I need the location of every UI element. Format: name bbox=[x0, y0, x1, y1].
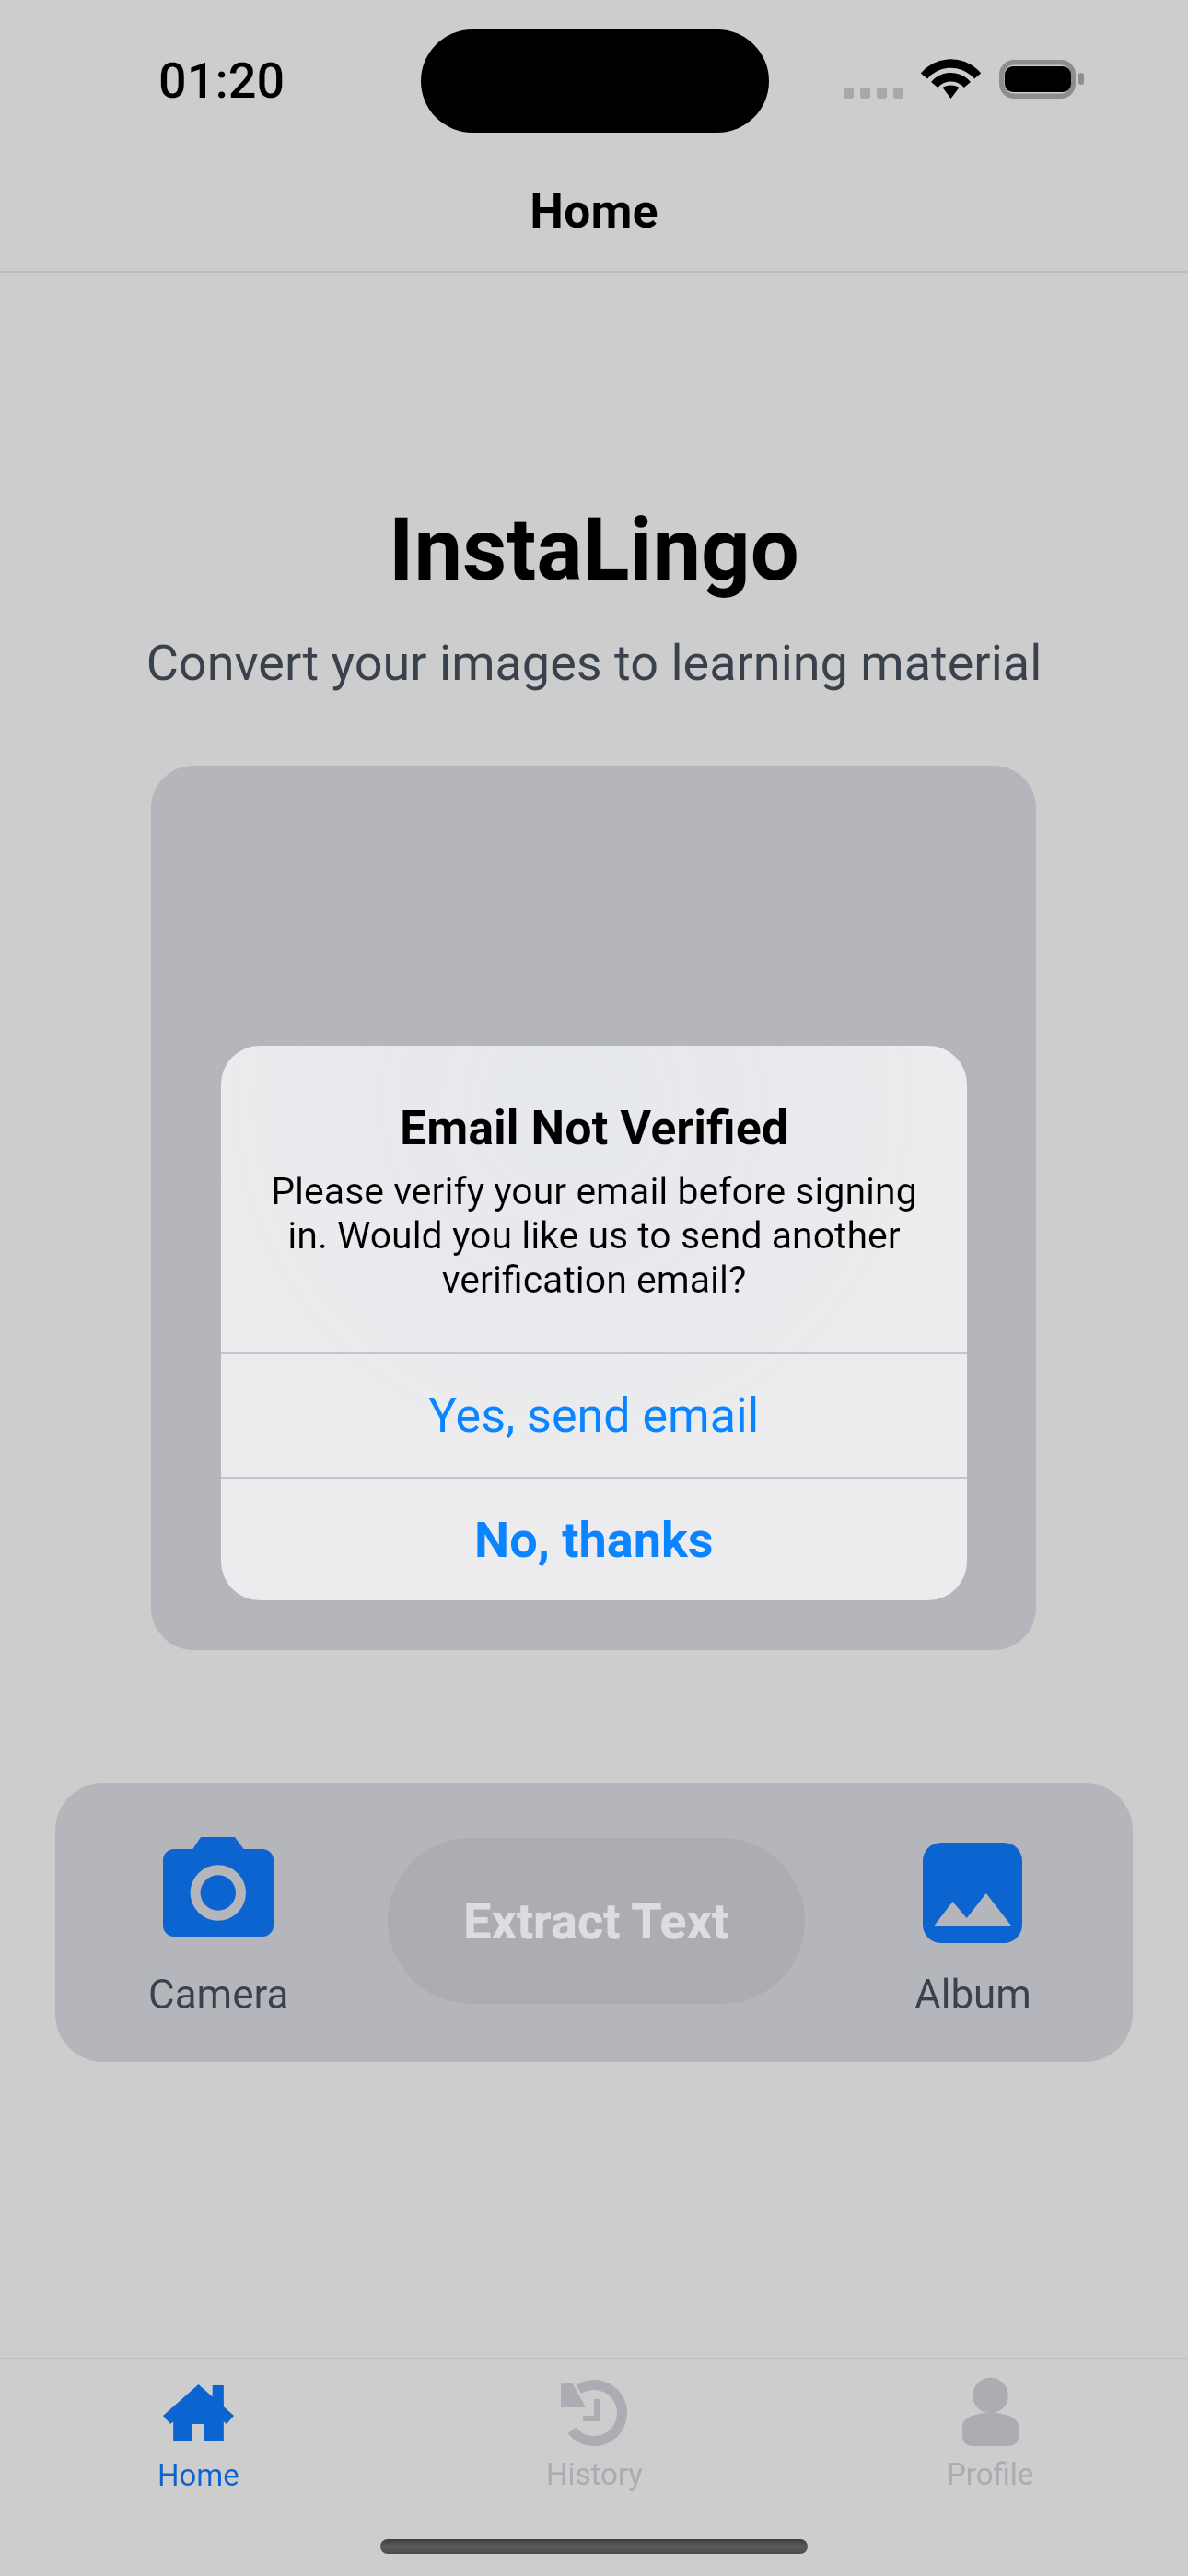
staticText: Yes, send email bbox=[428, 1388, 760, 1444]
staticText: Convert your images to learning material bbox=[0, 634, 1188, 692]
button[interactable]: Selected image preview bbox=[151, 766, 1036, 1650]
staticText: History bbox=[546, 2456, 643, 2492]
staticText: InstaLingo bbox=[0, 499, 1188, 601]
button[interactable]: Pick image from album bbox=[890, 1843, 1055, 2019]
button[interactable]: Take photo with camera bbox=[135, 1837, 301, 2019]
staticText: Album bbox=[914, 1971, 1031, 2019]
button[interactable]: Home bbox=[0, 2378, 396, 2493]
button[interactable]: Profile bbox=[792, 2378, 1188, 2492]
staticText: 01:20 bbox=[158, 52, 285, 110]
staticText: Profile bbox=[947, 2456, 1034, 2492]
button[interactable]: Extract Text bbox=[388, 1838, 805, 2004]
staticText: Home bbox=[157, 2457, 239, 2493]
staticText: Home bbox=[0, 183, 1188, 240]
button[interactable]: No, thanks bbox=[221, 1479, 967, 1600]
staticText: Email Not Verified bbox=[221, 1100, 967, 1156]
staticText: No, thanks bbox=[474, 1511, 714, 1569]
staticText: Camera bbox=[148, 1971, 289, 2019]
button[interactable]: History bbox=[396, 2378, 792, 2492]
button[interactable]: Yes, send email bbox=[221, 1354, 967, 1477]
staticText: Please verify your email before signing … bbox=[249, 1169, 939, 1302]
staticText: Extract Text bbox=[463, 1892, 729, 1950]
